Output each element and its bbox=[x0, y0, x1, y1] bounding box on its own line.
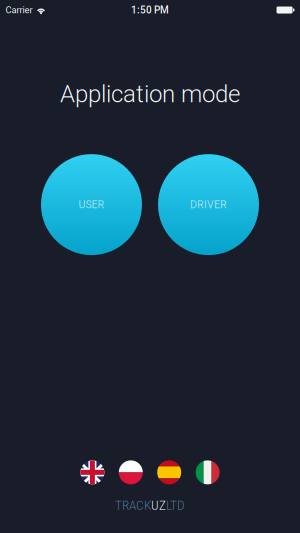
staticText: Application mode bbox=[60, 80, 240, 108]
staticText: Carrier bbox=[5, 4, 32, 15]
button[interactable]: Polish bbox=[119, 460, 143, 484]
staticText: LTD bbox=[166, 497, 185, 513]
staticText: UZ bbox=[151, 497, 166, 513]
staticText: TRACK bbox=[115, 497, 151, 513]
staticText: 1:50 PM bbox=[131, 4, 169, 16]
button[interactable]: English bbox=[80, 460, 104, 484]
staticText: USER bbox=[78, 198, 104, 211]
button[interactable]: DRIVER bbox=[158, 154, 259, 255]
button[interactable]: Spanish bbox=[157, 460, 181, 484]
staticText: DRIVER bbox=[190, 198, 227, 211]
button[interactable]: Italian bbox=[196, 460, 220, 484]
button[interactable]: USER bbox=[41, 154, 142, 255]
